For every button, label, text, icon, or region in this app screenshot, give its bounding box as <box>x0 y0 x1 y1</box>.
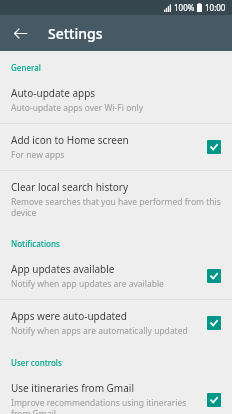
staticText: 100% <box>174 2 195 13</box>
staticText: Remove searches that you have performed … <box>11 196 221 218</box>
button[interactable]: Back <box>6 19 34 47</box>
staticText: General <box>11 62 41 73</box>
button[interactable]: Add icon to Home screen <box>0 124 232 170</box>
button[interactable]: Clear local search history <box>0 171 232 227</box>
button[interactable]: App updates available <box>0 253 232 299</box>
staticText: User controls <box>11 357 62 368</box>
staticText: Apps were auto-updated <box>11 309 127 323</box>
staticText: Auto-update apps over Wi-Fi only <box>11 102 144 114</box>
staticText: Use itineraries from Gmail <box>11 381 134 395</box>
button[interactable]: Use itineraries from Gmail <box>0 372 232 414</box>
staticText: Improve recommendations using itinerarie… <box>11 397 199 414</box>
staticText: For new apps <box>11 149 65 161</box>
button[interactable]: Apps were auto-updated <box>0 300 232 346</box>
staticText: Clear local search history <box>11 180 129 194</box>
staticText: Notify when apps are automatically updat… <box>11 325 188 337</box>
staticText: Settings <box>48 24 103 43</box>
button[interactable]: Auto-update apps <box>0 77 232 123</box>
staticText: Notifications <box>11 238 60 249</box>
staticText: Auto-update apps <box>11 86 96 100</box>
staticText: App updates available <box>11 262 115 276</box>
staticText: Notify when app updates are available <box>11 278 164 290</box>
staticText: 10:00 <box>205 2 226 13</box>
staticText: Add icon to Home screen <box>11 133 129 147</box>
